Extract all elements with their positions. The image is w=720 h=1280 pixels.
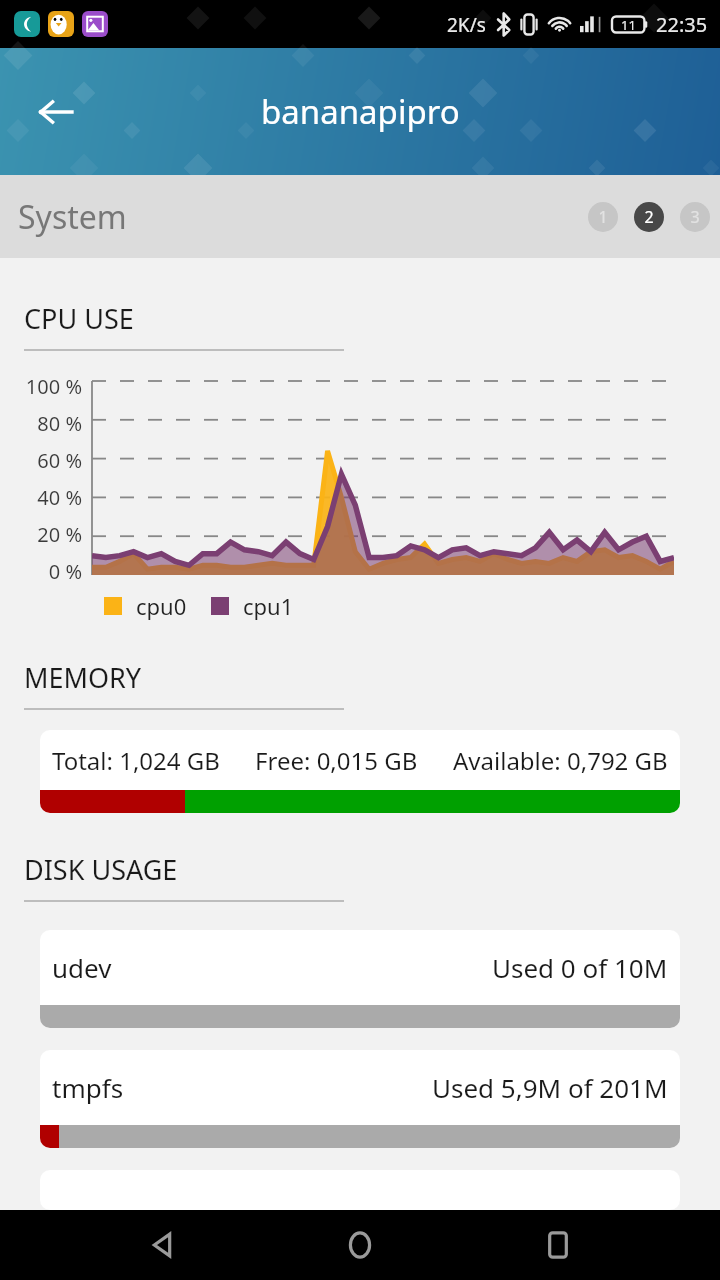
staticText: cpu1 [243,591,294,621]
staticText: 20 % [37,521,82,548]
staticText: 80 % [37,410,82,437]
button[interactable]: 3 [680,202,710,232]
button[interactable]: Back [26,82,86,142]
button[interactable]: Recent apps [522,1210,594,1280]
staticText: 11 [621,16,636,34]
staticText: tmpfs [52,1070,124,1105]
staticText: udev [52,950,112,985]
button[interactable]: Back [126,1210,198,1280]
staticText: MEMORY [24,659,142,696]
button[interactable]: udev [40,930,680,1028]
staticText: System [18,195,127,239]
staticText: cpu0 [136,591,187,621]
button[interactable]: tmpfs [40,1050,680,1148]
staticText: 1 [598,206,608,228]
staticText: 3 [690,206,700,228]
staticText: DISK USAGE [24,851,178,888]
staticText: 2K/s [447,12,486,38]
staticText: bananapipro [261,89,460,134]
button[interactable]: Total: 1,024 GB [40,730,680,813]
staticText: Used 5,9M of 201M [432,1070,668,1105]
staticText: 0 % [48,558,82,585]
button[interactable]: Home [324,1210,396,1280]
staticText: 22:35 [656,11,708,38]
staticText: Free: 0,015 GB [255,744,418,777]
staticText: Available: 0,792 GB [453,744,668,777]
staticText: CPU USE [24,300,134,337]
staticText: Used 0 of 10M [492,950,668,985]
staticText: 2 [644,206,654,228]
staticText: 60 % [37,447,82,474]
button[interactable]: 1 [588,202,618,232]
staticText: Total: 1,024 GB [52,744,220,777]
staticText: 100 % [25,373,82,400]
staticText: 40 % [37,484,82,511]
button[interactable]: 2 [634,202,664,232]
